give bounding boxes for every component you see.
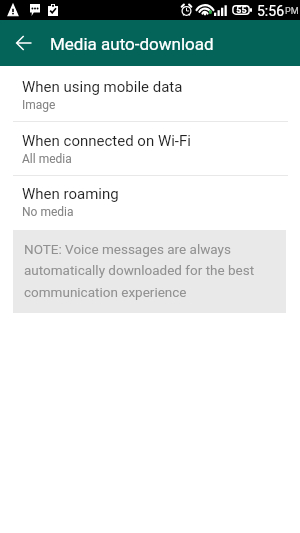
staticText: No media	[22, 205, 74, 219]
staticText: NOTE: Voice messages are always automati…	[24, 241, 272, 301]
staticText: 55	[236, 5, 247, 15]
staticText: PM	[285, 6, 299, 17]
staticText: When roaming	[22, 185, 119, 203]
button[interactable]: When connected on Wi-Fi	[0, 122, 300, 175]
button[interactable]: When roaming	[0, 176, 300, 230]
button[interactable]: When using mobile data	[0, 66, 300, 121]
staticText: 5:56	[257, 3, 284, 19]
staticText: All media	[22, 152, 72, 166]
staticText: When connected on Wi-Fi	[22, 132, 191, 150]
staticText: When using mobile data	[22, 78, 183, 96]
staticText: Media auto-download	[50, 34, 214, 54]
staticText: Image	[22, 98, 56, 112]
button[interactable]: Back	[6, 25, 42, 61]
